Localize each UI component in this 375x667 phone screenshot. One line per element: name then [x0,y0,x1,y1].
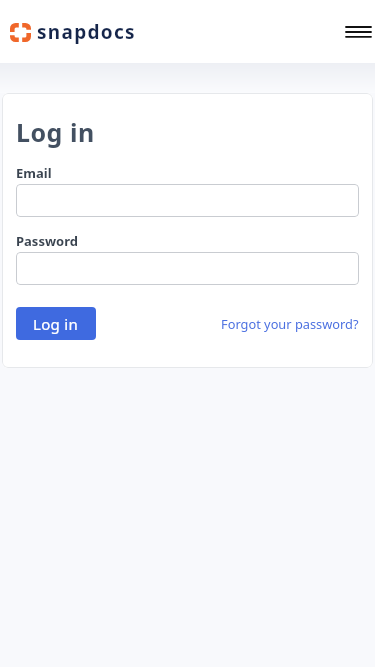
staticText: snapdocs [37,19,136,45]
staticText: Log in [16,115,95,149]
staticText: Password [16,232,78,250]
staticText: Email [16,164,52,182]
staticText: Log in [33,314,79,334]
button[interactable]: Log in [16,307,96,340]
button[interactable] [16,252,359,285]
button[interactable] [342,15,375,48]
staticText: Forgot your password? [221,315,359,332]
button[interactable]: Forgot your password? [221,315,359,332]
button[interactable] [16,184,359,217]
